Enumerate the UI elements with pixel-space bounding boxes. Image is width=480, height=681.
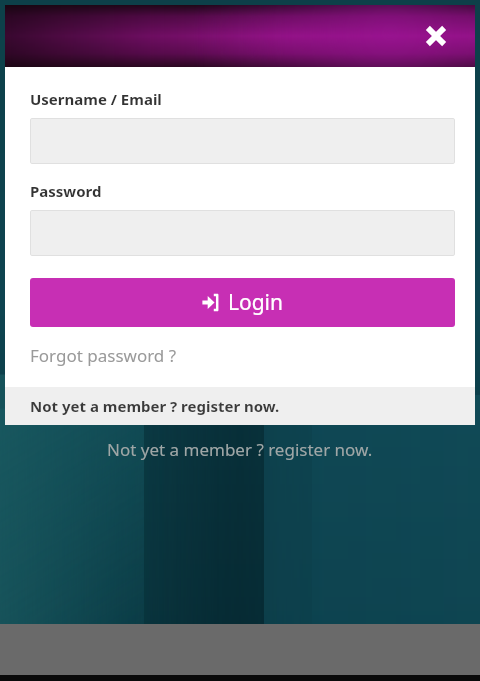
button[interactable]: Not yet a member ? register now.: [5, 387, 475, 425]
button[interactable]: Forgot password ?: [30, 344, 177, 367]
staticText: Forgot password ?: [30, 344, 177, 367]
staticText: Not yet a member ? register now.: [30, 396, 280, 416]
button[interactable]: Login: [30, 278, 455, 327]
button[interactable]: [30, 118, 455, 164]
staticText: Username / Email: [30, 89, 162, 109]
staticText: Password: [30, 181, 102, 201]
staticText: Not yet a member ? register now.: [107, 438, 373, 461]
button[interactable]: [30, 210, 455, 256]
staticText: Login: [228, 288, 284, 317]
button[interactable]: Close: [413, 13, 459, 59]
button[interactable]: Not yet a member ? register now.: [0, 438, 480, 461]
